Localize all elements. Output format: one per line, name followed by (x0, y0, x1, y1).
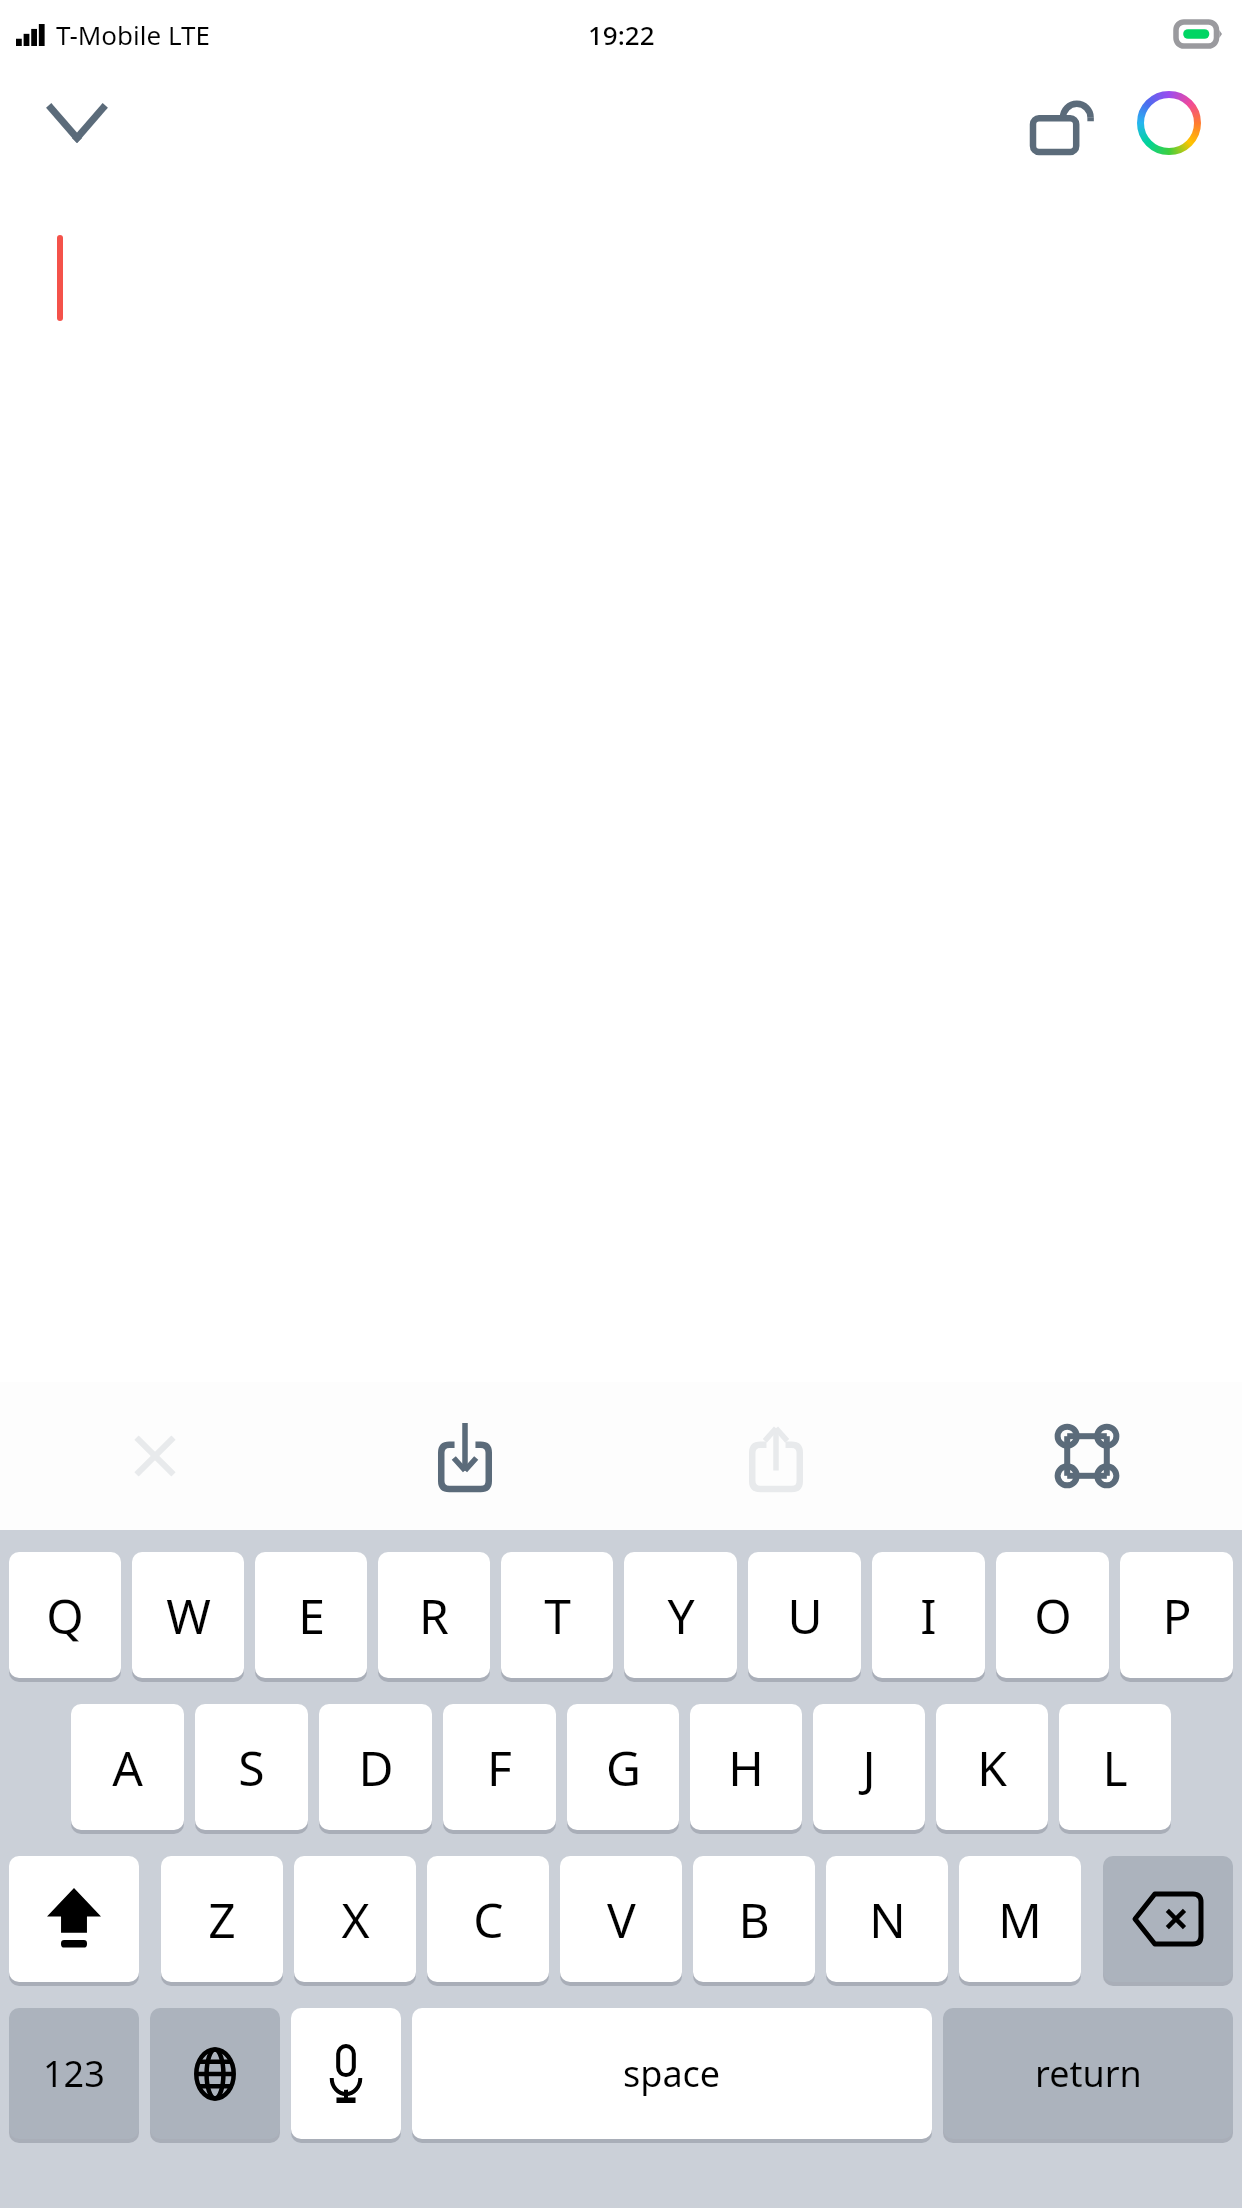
button[interactable]: Share (620, 1382, 931, 1530)
staticText: H (728, 1735, 764, 1800)
staticText: Y (667, 1583, 695, 1648)
button[interactable]: V (560, 1856, 682, 1982)
button[interactable]: Backspace (1103, 1856, 1233, 1982)
button[interactable]: M (959, 1856, 1081, 1982)
button[interactable]: T (501, 1552, 613, 1678)
button[interactable]: J (813, 1704, 925, 1830)
staticText: T (544, 1583, 571, 1648)
staticText: M (998, 1887, 1042, 1952)
staticText: A (112, 1735, 143, 1800)
staticText: W (166, 1583, 211, 1648)
button[interactable]: X (294, 1856, 416, 1982)
staticText: T-Mobile LTE (56, 17, 210, 52)
button[interactable]: W (132, 1552, 244, 1678)
button[interactable]: P (1120, 1552, 1233, 1678)
staticText: R (419, 1583, 449, 1648)
button[interactable]: D (319, 1704, 432, 1830)
button[interactable]: Z (161, 1856, 283, 1982)
staticText: F (487, 1735, 512, 1800)
button[interactable]: F (443, 1704, 556, 1830)
staticText: S (238, 1735, 265, 1800)
button[interactable]: K (936, 1704, 1048, 1830)
button[interactable]: Next keyboard (150, 2008, 280, 2139)
staticText: L (1102, 1735, 1128, 1800)
button[interactable]: Dictate (291, 2008, 401, 2139)
button[interactable]: Shift (9, 1856, 139, 1982)
staticText: 19:22 (588, 17, 655, 52)
staticText: X (341, 1887, 370, 1952)
button[interactable]: L (1059, 1704, 1171, 1830)
staticText: Q (46, 1583, 84, 1648)
button[interactable]: Q (9, 1552, 121, 1678)
staticText: D (358, 1735, 394, 1800)
staticText: 123 (43, 2049, 105, 2098)
button[interactable]: U (748, 1552, 861, 1678)
staticText: G (606, 1735, 641, 1800)
button[interactable]: Y (624, 1552, 737, 1678)
staticText: return (1035, 2049, 1142, 2098)
button[interactable]: O (996, 1552, 1109, 1678)
staticText: space (623, 2049, 721, 2098)
button[interactable]: G (567, 1704, 679, 1830)
staticText: P (1162, 1583, 1192, 1648)
button[interactable]: N (826, 1856, 948, 1982)
button[interactable]: C (427, 1856, 549, 1982)
button[interactable]: Colour (1126, 80, 1212, 166)
button[interactable]: Collapse (38, 84, 116, 162)
button[interactable]: I (872, 1552, 985, 1678)
button[interactable]: B (693, 1856, 815, 1982)
staticText: Z (208, 1887, 236, 1952)
button[interactable]: Import (310, 1382, 620, 1530)
staticText: N (869, 1887, 906, 1952)
button[interactable]: Numbers (9, 2008, 139, 2139)
button[interactable]: H (690, 1704, 802, 1830)
button[interactable]: Lock (1020, 80, 1106, 166)
staticText: C (473, 1887, 504, 1952)
staticText: B (738, 1887, 770, 1952)
staticText: J (862, 1735, 876, 1800)
staticText: U (787, 1583, 823, 1648)
staticText: I (920, 1583, 937, 1648)
button[interactable]: S (195, 1704, 308, 1830)
button[interactable]: E (255, 1552, 367, 1678)
button[interactable]: space (412, 2008, 932, 2139)
staticText: V (607, 1887, 636, 1952)
button[interactable]: R (378, 1552, 490, 1678)
staticText: E (298, 1583, 325, 1648)
staticText: O (1034, 1583, 1072, 1648)
button[interactable]: return (943, 2008, 1233, 2139)
button[interactable]: Shortcuts (931, 1382, 1242, 1530)
staticText: K (977, 1735, 1007, 1800)
button[interactable]: A (71, 1704, 184, 1830)
